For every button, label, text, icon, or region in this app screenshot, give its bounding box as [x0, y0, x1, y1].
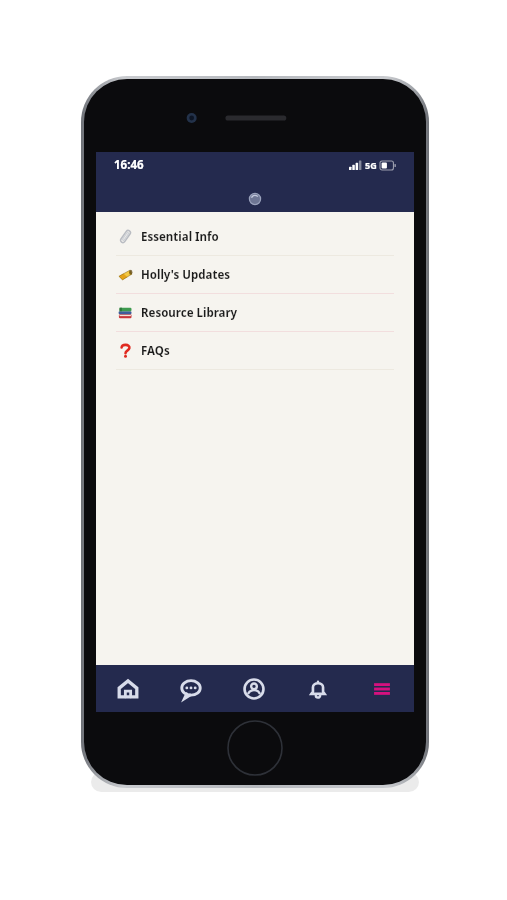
button[interactable]: Profile: [222, 665, 286, 712]
button[interactable]: Holly's Updates: [96, 256, 414, 293]
staticText: Essential Info: [141, 229, 219, 245]
button[interactable]: FAQs: [96, 332, 414, 369]
button[interactable]: Notifications: [286, 665, 350, 712]
button[interactable]: Resource Library: [96, 294, 414, 331]
button[interactable]: Messages: [159, 665, 222, 712]
staticText: FAQs: [141, 343, 170, 359]
staticText: Resource Library: [141, 305, 238, 321]
staticText: 16:46: [114, 157, 144, 173]
button[interactable]: Essential Info: [96, 218, 414, 255]
staticText: 5G: [365, 159, 377, 171]
button[interactable]: Home: [96, 665, 159, 712]
button[interactable]: Menu: [350, 665, 414, 712]
staticText: Holly's Updates: [141, 267, 231, 283]
